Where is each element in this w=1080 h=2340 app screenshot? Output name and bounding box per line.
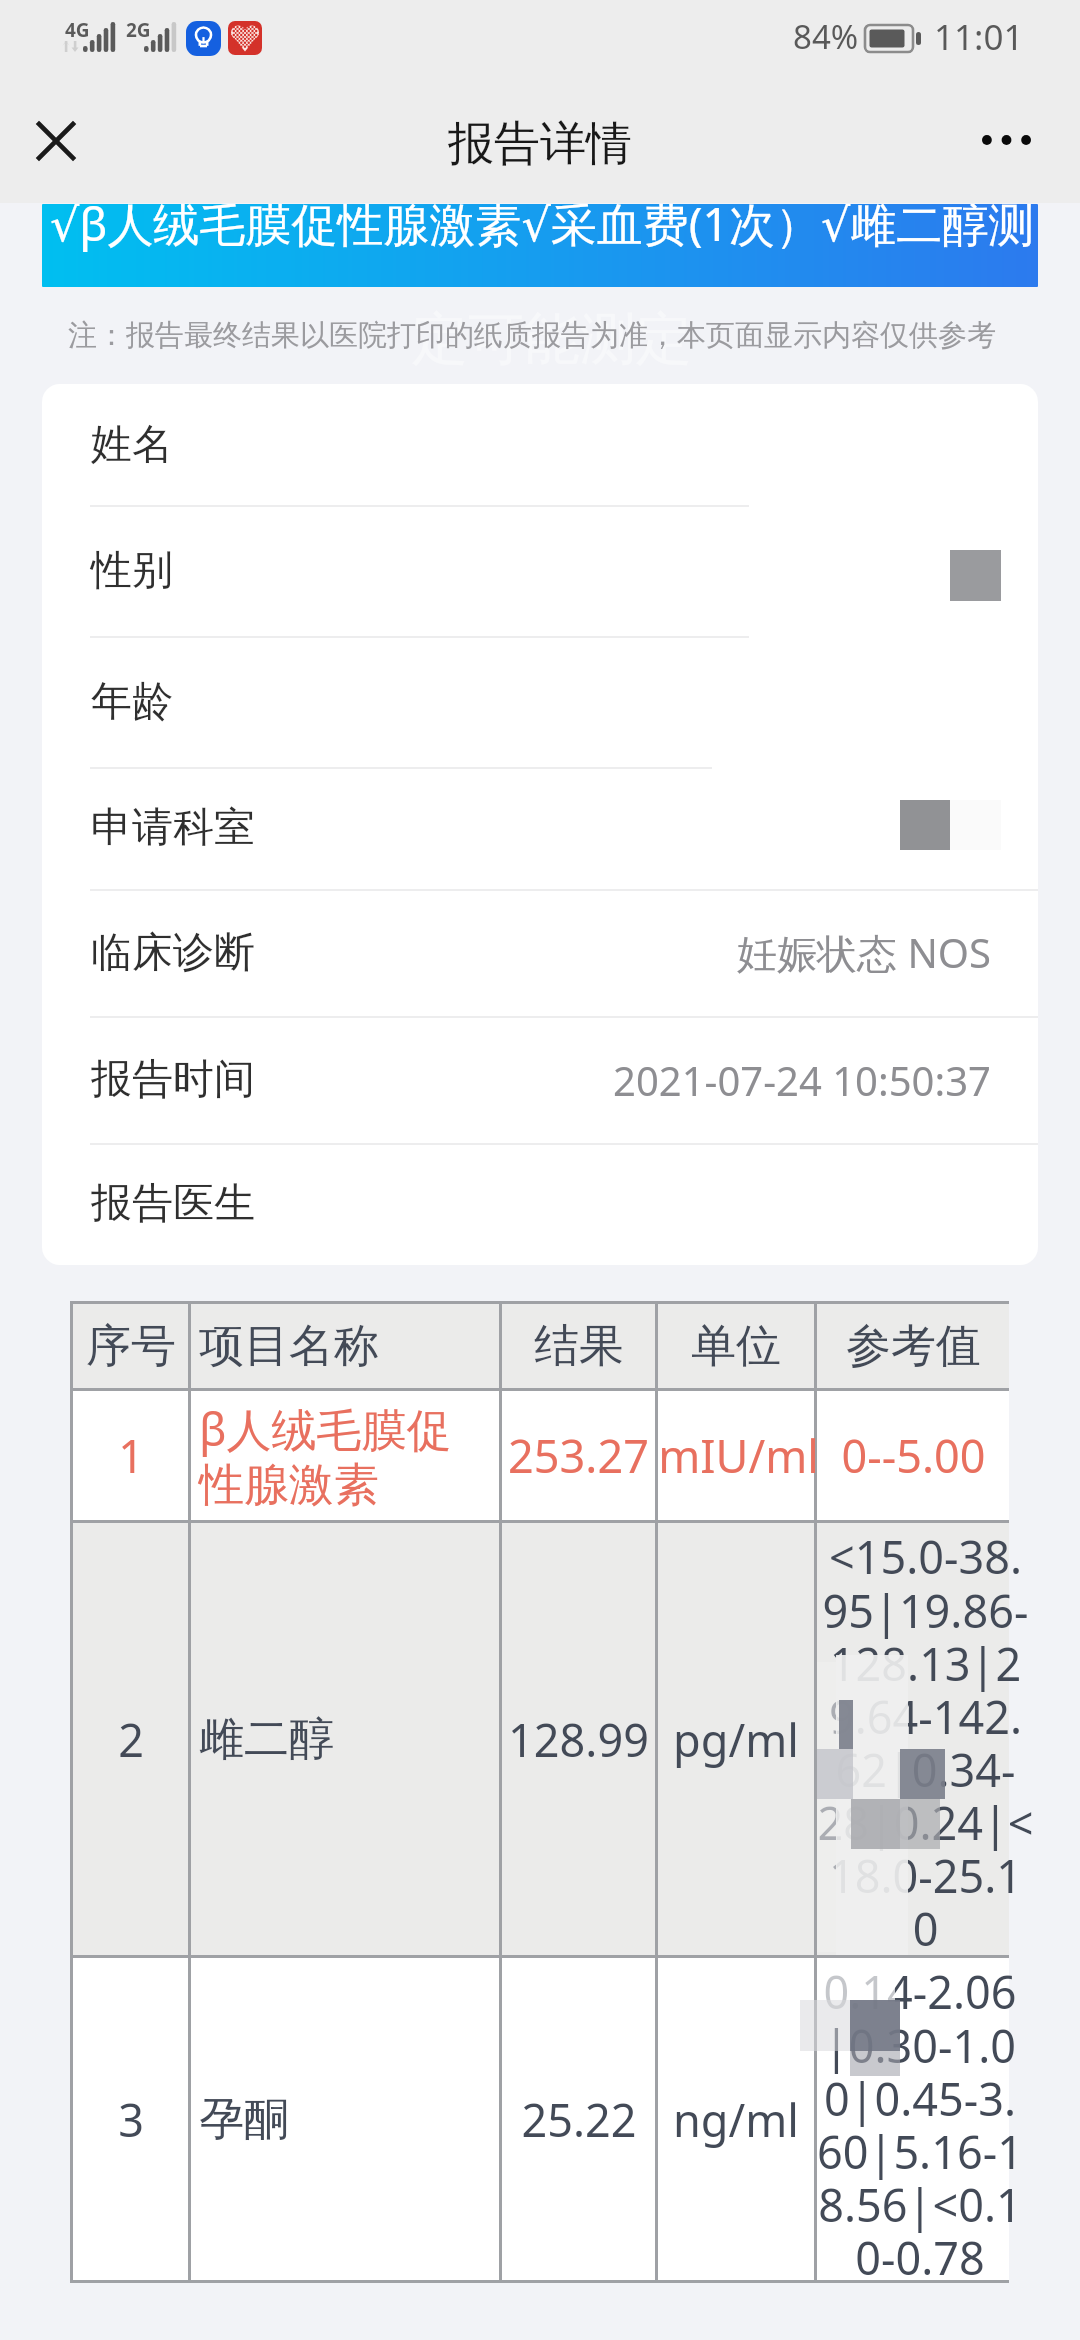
staticText: 25.22 (521, 2089, 637, 2150)
staticText: 临床诊断 (91, 927, 255, 979)
staticText: 单位 (691, 1318, 781, 1375)
staticText: 253.27 (508, 1425, 649, 1486)
button[interactable]: 临床诊断 (42, 889, 1038, 1016)
button[interactable]: √β人绒毛膜促性腺激素√采血费(1次）√雌二醇测 (42, 204, 1038, 287)
staticText: 雌二醇 (199, 1711, 334, 1768)
staticText: 3 (118, 2089, 144, 2150)
staticText: 2G (126, 17, 151, 43)
staticText: 申请科室 (91, 802, 255, 854)
staticText: 孕酮 (199, 2091, 289, 2148)
staticText: 妊娠状态 NOS (737, 925, 991, 980)
staticText: 11:01 (934, 13, 1024, 61)
staticText: 定可能测定 (412, 304, 692, 375)
staticText: ng/ml (673, 2089, 799, 2150)
staticText: mIU/ml (658, 1425, 814, 1486)
button[interactable]: 姓名 (42, 384, 1038, 505)
staticText: 结果 (534, 1318, 624, 1375)
staticText: 4G (65, 17, 90, 43)
button[interactable]: 性别 (42, 505, 1038, 636)
button[interactable]: 报告医生 (42, 1143, 1038, 1265)
staticText: 性别 (91, 545, 173, 597)
button[interactable]: Close (18, 104, 90, 176)
staticText: 0.14-2.06 |0.30-1.0 0|0.45-3. 60|5.16-1 … (817, 1961, 1009, 2283)
staticText: 0--5.00 (841, 1425, 986, 1486)
staticText: 注：报告最终结果以医院打印的纸质报告为准，本页面显示内容仅供参考 (68, 317, 996, 354)
staticText: 128.99 (508, 1709, 649, 1770)
staticText: 姓名 (91, 419, 173, 471)
staticText: 报告医生 (91, 1178, 255, 1230)
button[interactable]: 报告时间 (42, 1016, 1038, 1143)
staticText: 序号 (86, 1318, 176, 1375)
button[interactable]: 申请科室 (42, 767, 1038, 889)
staticText: 2021-07-24 10:50:37 (613, 1053, 991, 1107)
button[interactable]: More options (952, 106, 1054, 174)
staticText: 1 (118, 1425, 144, 1486)
staticText: 参考值 (846, 1318, 981, 1375)
staticText: 年龄 (91, 676, 173, 728)
staticText: 2 (118, 1709, 144, 1770)
staticText: 报告详情 (448, 115, 632, 173)
staticText: <15.0-38. 95|19.86- 128.13|2 9.64-142. 6… (817, 1526, 1009, 1958)
staticText: pg/ml (673, 1709, 799, 1770)
staticText: 报告时间 (91, 1054, 255, 1106)
staticText: β人绒毛膜促 性腺激素 (199, 1398, 452, 1513)
button[interactable]: 年龄 (42, 636, 1038, 767)
staticText: √β人绒毛膜促性腺激素√采血费(1次）√雌二醇测 (50, 204, 1035, 255)
staticText: 项目名称 (199, 1318, 379, 1375)
staticText: 84% (793, 14, 859, 59)
